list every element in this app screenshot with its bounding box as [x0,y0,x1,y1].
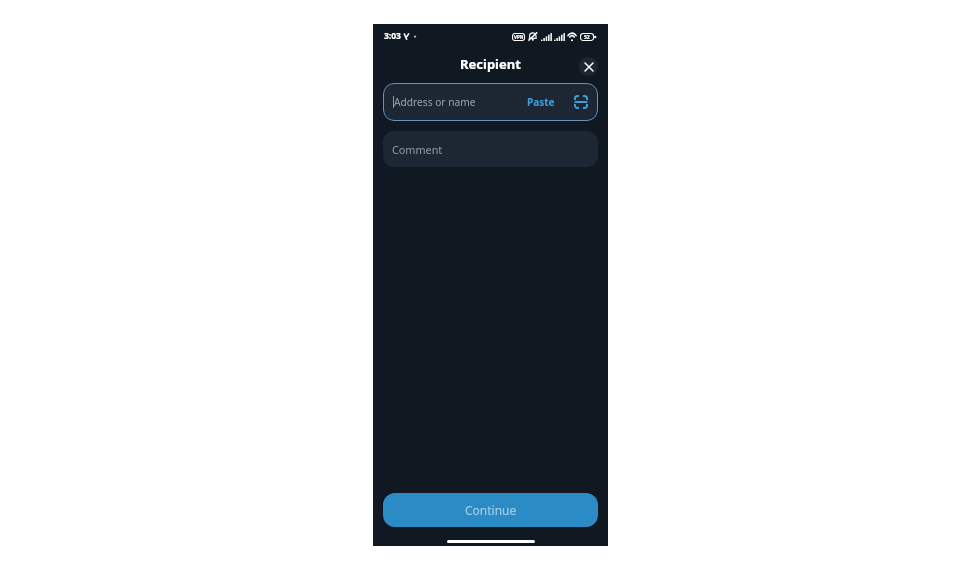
button[interactable]: Continue [383,493,598,527]
staticText: Paste [527,95,555,109]
staticText: 52 [584,34,590,41]
staticText: Address or name [394,95,476,109]
button[interactable]: Address or name [383,83,598,121]
staticText: Recipient [460,55,521,73]
button[interactable]: Close [579,57,598,76]
staticText: Continue [465,502,517,518]
staticText: 3:03 [384,30,401,42]
button[interactable]: Paste [525,92,557,112]
button[interactable]: Comment [383,131,598,167]
staticText: Comment [392,142,443,157]
button[interactable]: Scan QR code [573,94,589,110]
staticText: VPN [514,34,524,40]
